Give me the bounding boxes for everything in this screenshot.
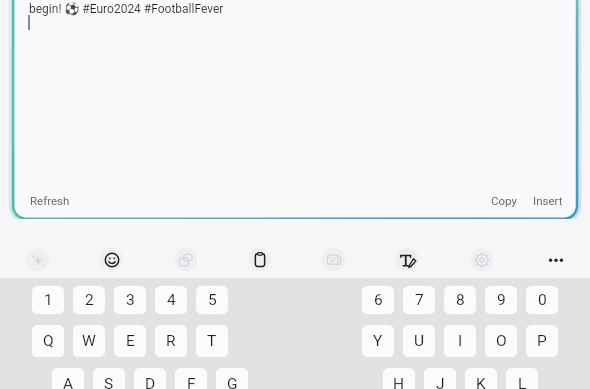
staticText: 6: [374, 291, 383, 309]
staticText: I: [458, 332, 463, 350]
staticText: A: [63, 375, 74, 389]
staticText: 3: [126, 291, 135, 309]
staticText: S: [104, 375, 114, 389]
staticText: 2: [85, 291, 94, 309]
button[interactable]: A: [52, 368, 84, 389]
button[interactable]: H: [383, 368, 415, 389]
button[interactable]: R: [155, 325, 187, 357]
staticText: Insert: [533, 194, 563, 207]
button[interactable]: S: [93, 368, 125, 389]
staticText: Copy: [491, 194, 517, 207]
staticText: T: [207, 332, 217, 350]
staticText: E: [126, 332, 135, 350]
staticText: O: [496, 332, 507, 350]
staticText: 1: [44, 291, 53, 309]
button[interactable]: 9: [485, 286, 517, 314]
staticText: U: [414, 332, 425, 350]
staticText: G: [227, 375, 238, 389]
staticText: 8: [456, 291, 465, 309]
button[interactable]: U: [403, 325, 435, 357]
staticText: P: [537, 332, 547, 350]
staticText: begin! ⚽ #Euro2024 #FootballFever: [29, 2, 224, 16]
button[interactable]: O: [485, 325, 517, 357]
button[interactable]: Settings: [470, 248, 493, 271]
button[interactable]: L: [506, 368, 538, 389]
staticText: K: [476, 375, 486, 389]
staticText: 5: [208, 291, 217, 309]
staticText: Q: [43, 332, 54, 350]
button[interactable]: Stickers: [174, 248, 197, 271]
staticText: W: [82, 332, 96, 350]
button[interactable]: K: [465, 368, 497, 389]
staticText: Refresh: [30, 194, 70, 207]
staticText: D: [145, 375, 156, 389]
button[interactable]: 0: [526, 286, 558, 314]
button[interactable]: 1: [32, 286, 64, 314]
staticText: F: [187, 375, 196, 389]
button[interactable]: P: [526, 325, 558, 357]
button[interactable]: Q: [32, 325, 64, 357]
button[interactable]: 7: [403, 286, 435, 314]
button[interactable]: Handwriting: [396, 248, 419, 271]
button[interactable]: I: [444, 325, 476, 357]
button[interactable]: G: [216, 368, 248, 389]
button[interactable]: 2: [73, 286, 105, 314]
button[interactable]: E: [114, 325, 146, 357]
button[interactable]: F: [175, 368, 207, 389]
button[interactable]: D: [134, 368, 166, 389]
button[interactable]: 8: [444, 286, 476, 314]
staticText: 0: [538, 291, 547, 309]
button[interactable]: W: [73, 325, 105, 357]
button[interactable]: Clipboard: [248, 248, 271, 271]
staticText: 9: [497, 291, 506, 309]
staticText: R: [166, 332, 176, 350]
button[interactable]: 5: [196, 286, 228, 314]
button[interactable]: 6: [362, 286, 394, 314]
staticText: J: [436, 375, 445, 389]
button[interactable]: Emoji: [100, 248, 123, 271]
button[interactable]: Copy: [482, 190, 526, 211]
button[interactable]: T: [196, 325, 228, 357]
staticText: 4: [167, 291, 176, 309]
button[interactable]: More options: [544, 248, 567, 271]
button[interactable]: Y: [362, 325, 394, 357]
button[interactable]: 4: [155, 286, 187, 314]
button[interactable]: J: [424, 368, 456, 389]
button[interactable]: Writing assist: [26, 248, 49, 271]
staticText: Y: [373, 332, 383, 350]
staticText: 7: [415, 291, 424, 309]
button[interactable]: Translate: [322, 248, 345, 271]
button[interactable]: 3: [114, 286, 146, 314]
button[interactable]: Insert: [524, 190, 572, 211]
staticText: L: [518, 375, 527, 389]
staticText: H: [393, 375, 405, 389]
button[interactable]: Refresh: [21, 190, 79, 211]
